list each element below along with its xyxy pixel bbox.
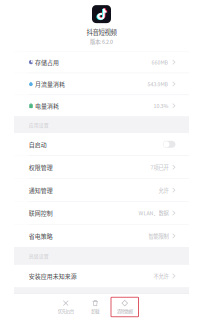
staticText: 自启动	[29, 140, 47, 149]
staticText: 权限管理	[29, 163, 53, 171]
staticText: 应用设置	[29, 121, 49, 128]
staticText: 省电策略	[29, 232, 53, 240]
staticText: 月流量消耗	[35, 80, 65, 88]
staticText: 10.3%	[153, 102, 168, 110]
staticText: 清除数据	[117, 308, 133, 314]
staticText: 允许	[158, 186, 168, 194]
staticText: 高级设置	[29, 252, 49, 259]
staticText: 电量消耗	[35, 101, 59, 110]
staticText: 存储占用	[35, 58, 59, 66]
button[interactable]: 省电策略	[14, 225, 189, 247]
staticText: 版本: 6.2.0	[90, 38, 113, 45]
button[interactable]: 联网控制	[14, 202, 189, 224]
button[interactable]: 通知管理	[14, 179, 189, 201]
staticText: 抖音短视频	[86, 27, 116, 37]
staticText: WLAN、数据	[138, 209, 168, 217]
button[interactable]: 清除数据	[111, 297, 138, 317]
button[interactable]: 权限管理	[14, 156, 189, 178]
staticText: 优先后台	[58, 308, 74, 314]
staticText: 卸载	[91, 308, 99, 314]
staticText: 安装应用未知来源	[29, 272, 77, 280]
button[interactable]: 月流量消耗	[14, 73, 189, 95]
button[interactable]: 优先后台	[52, 297, 79, 317]
button[interactable]: 卸载	[81, 297, 109, 317]
staticText: 7项已开	[150, 163, 168, 171]
staticText: 智能限制	[148, 232, 168, 240]
button[interactable]: 存储占用	[14, 51, 189, 73]
button[interactable]: 安装应用未知来源	[14, 265, 189, 287]
staticText: 660MB	[151, 58, 168, 66]
button[interactable]: 自启动	[163, 140, 175, 149]
button[interactable]: 电量消耗	[14, 95, 189, 116]
staticText: 通知管理	[29, 186, 53, 194]
staticText: 543.9MB	[147, 80, 168, 88]
staticText: 不允许	[153, 272, 168, 280]
staticText: 联网控制	[29, 209, 53, 217]
